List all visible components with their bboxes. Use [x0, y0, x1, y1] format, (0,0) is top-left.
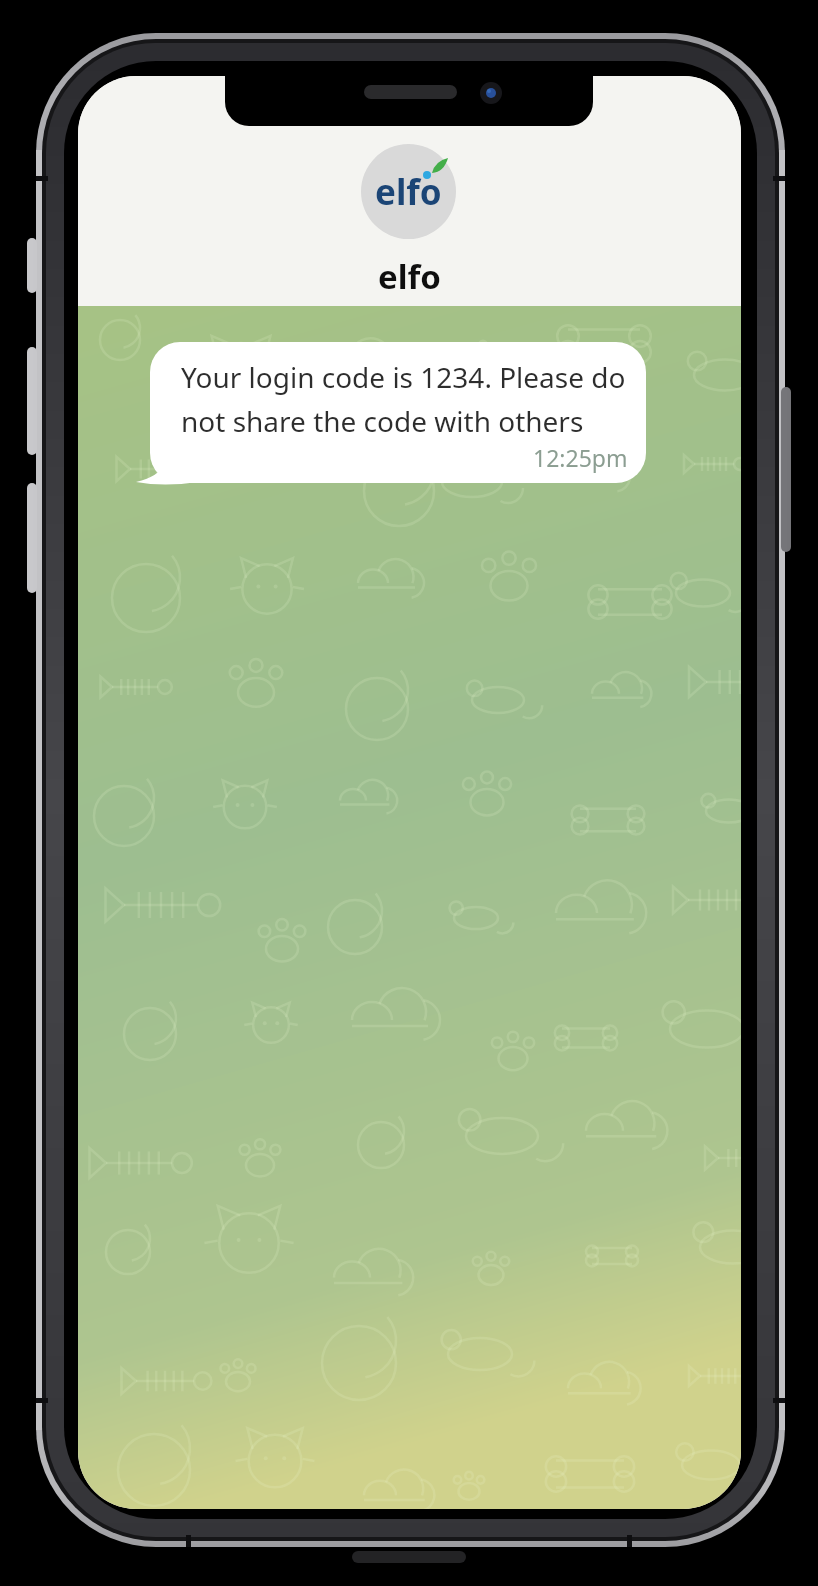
staticText: 12:25pm — [533, 442, 628, 473]
button[interactable]: elfo — [78, 76, 741, 306]
staticText: elfo — [378, 254, 441, 299]
staticText: Your login code is 1234. Please do — [181, 358, 626, 396]
staticText: elfo — [375, 168, 442, 216]
staticText: not share the code with others — [181, 402, 584, 440]
button[interactable]: Your login code is 1234. Please do — [150, 342, 646, 483]
